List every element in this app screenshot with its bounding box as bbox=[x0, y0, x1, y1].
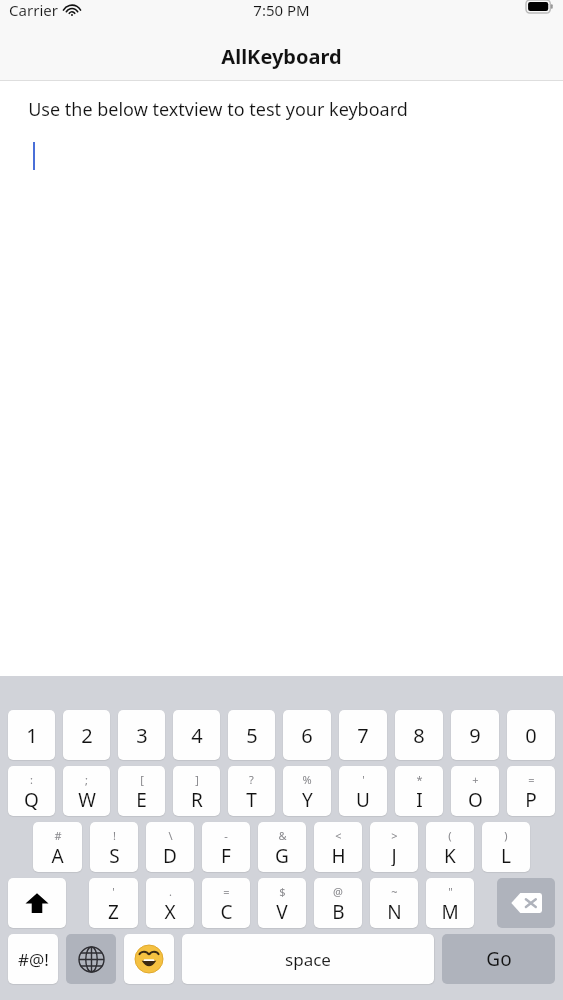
button[interactable]: @ bbox=[314, 878, 362, 928]
button[interactable]: ] bbox=[173, 766, 220, 816]
staticText: C bbox=[220, 899, 233, 922]
staticText: $ bbox=[279, 884, 286, 899]
staticText: 4 bbox=[191, 722, 203, 749]
staticText: L bbox=[501, 843, 511, 866]
staticText: O bbox=[468, 787, 483, 810]
button[interactable]: #@! bbox=[8, 934, 58, 984]
staticText: ; bbox=[85, 772, 88, 787]
button[interactable]: % bbox=[283, 766, 331, 816]
staticText: ) bbox=[504, 828, 508, 843]
staticText: 7:50 PM bbox=[253, 0, 310, 20]
button[interactable]: & bbox=[258, 822, 306, 872]
button[interactable]: 0 bbox=[507, 710, 555, 760]
staticText: X bbox=[164, 899, 176, 922]
button[interactable]: * bbox=[395, 766, 443, 816]
staticText: " bbox=[448, 884, 453, 899]
staticText: J bbox=[391, 843, 397, 866]
button[interactable]: ) bbox=[482, 822, 530, 872]
button[interactable]: Shift bbox=[8, 878, 66, 928]
button[interactable]: 1 bbox=[8, 710, 55, 760]
staticText: [ bbox=[140, 772, 144, 787]
staticText: = bbox=[528, 772, 535, 787]
staticText: U bbox=[356, 787, 370, 810]
button[interactable]: 7 bbox=[339, 710, 387, 760]
staticText: W bbox=[78, 787, 96, 810]
staticText: : bbox=[30, 772, 33, 787]
staticText: ~ bbox=[391, 884, 398, 899]
staticText: ! bbox=[113, 828, 116, 843]
staticText: = bbox=[223, 884, 230, 899]
button[interactable]: = bbox=[507, 766, 555, 816]
staticText: ] bbox=[195, 772, 199, 787]
button[interactable]: . bbox=[146, 878, 194, 928]
button[interactable]: < bbox=[314, 822, 362, 872]
staticText: K bbox=[444, 843, 456, 866]
staticText: D bbox=[163, 843, 177, 866]
staticText: P bbox=[525, 787, 537, 810]
button[interactable]: 8 bbox=[395, 710, 443, 760]
button[interactable]: ; bbox=[63, 766, 110, 816]
button[interactable]: # bbox=[33, 822, 82, 872]
staticText: G bbox=[275, 843, 289, 866]
staticText: ? bbox=[249, 772, 254, 787]
button[interactable]: [ bbox=[118, 766, 165, 816]
staticText: Q bbox=[24, 787, 39, 810]
staticText: > bbox=[391, 828, 398, 843]
button[interactable]: - bbox=[202, 822, 250, 872]
staticText: @ bbox=[333, 884, 343, 899]
button[interactable]: \ bbox=[146, 822, 194, 872]
staticText: 9 bbox=[469, 722, 481, 749]
staticText: < bbox=[335, 828, 342, 843]
button[interactable]: Backspace bbox=[497, 878, 555, 928]
staticText: N bbox=[387, 899, 402, 922]
staticText: M bbox=[441, 899, 459, 922]
staticText: V bbox=[276, 899, 288, 922]
button[interactable]: ~ bbox=[370, 878, 418, 928]
staticText: Y bbox=[302, 787, 313, 810]
button[interactable]: " bbox=[426, 878, 474, 928]
staticText: F bbox=[221, 843, 231, 866]
staticText: I bbox=[416, 787, 423, 810]
button[interactable]: space bbox=[182, 934, 434, 984]
button[interactable]: 2 bbox=[63, 710, 110, 760]
staticText: Go bbox=[486, 946, 512, 972]
button[interactable]: 6 bbox=[283, 710, 331, 760]
staticText: 1 bbox=[26, 722, 38, 749]
staticText: * bbox=[416, 772, 423, 787]
staticText: T bbox=[246, 787, 257, 810]
button[interactable]: Change keyboard language bbox=[66, 934, 116, 984]
staticText: ' bbox=[112, 884, 115, 899]
staticText: 6 bbox=[301, 722, 313, 749]
button[interactable]: = bbox=[202, 878, 250, 928]
button[interactable]: $ bbox=[258, 878, 306, 928]
button[interactable]: Go bbox=[442, 934, 555, 984]
staticText: S bbox=[109, 843, 120, 866]
button[interactable]: ' bbox=[89, 878, 138, 928]
staticText: + bbox=[472, 772, 479, 787]
staticText: R bbox=[191, 787, 203, 810]
button[interactable]: : bbox=[8, 766, 55, 816]
button[interactable]: ? bbox=[228, 766, 275, 816]
button[interactable]: ( bbox=[426, 822, 474, 872]
button[interactable]: > bbox=[370, 822, 418, 872]
button[interactable]: 4 bbox=[173, 710, 220, 760]
staticText: # bbox=[54, 828, 62, 843]
staticText: & bbox=[278, 828, 287, 843]
staticText: 8 bbox=[413, 722, 425, 749]
staticText: 2 bbox=[81, 722, 93, 749]
staticText: E bbox=[136, 787, 147, 810]
button[interactable]: + bbox=[451, 766, 499, 816]
staticText: space bbox=[285, 948, 331, 971]
button[interactable]: 9 bbox=[451, 710, 499, 760]
staticText: % bbox=[302, 772, 312, 787]
staticText: - bbox=[224, 828, 228, 843]
button[interactable]: ' bbox=[339, 766, 387, 816]
staticText: Carrier bbox=[9, 0, 58, 20]
button[interactable]: Emoji bbox=[124, 934, 174, 984]
button[interactable]: 3 bbox=[118, 710, 165, 760]
staticText: 0 bbox=[525, 722, 537, 749]
button[interactable]: ! bbox=[90, 822, 138, 872]
staticText: ' bbox=[362, 772, 365, 787]
staticText: AllKeyboard bbox=[221, 43, 342, 70]
button[interactable]: 5 bbox=[228, 710, 275, 760]
